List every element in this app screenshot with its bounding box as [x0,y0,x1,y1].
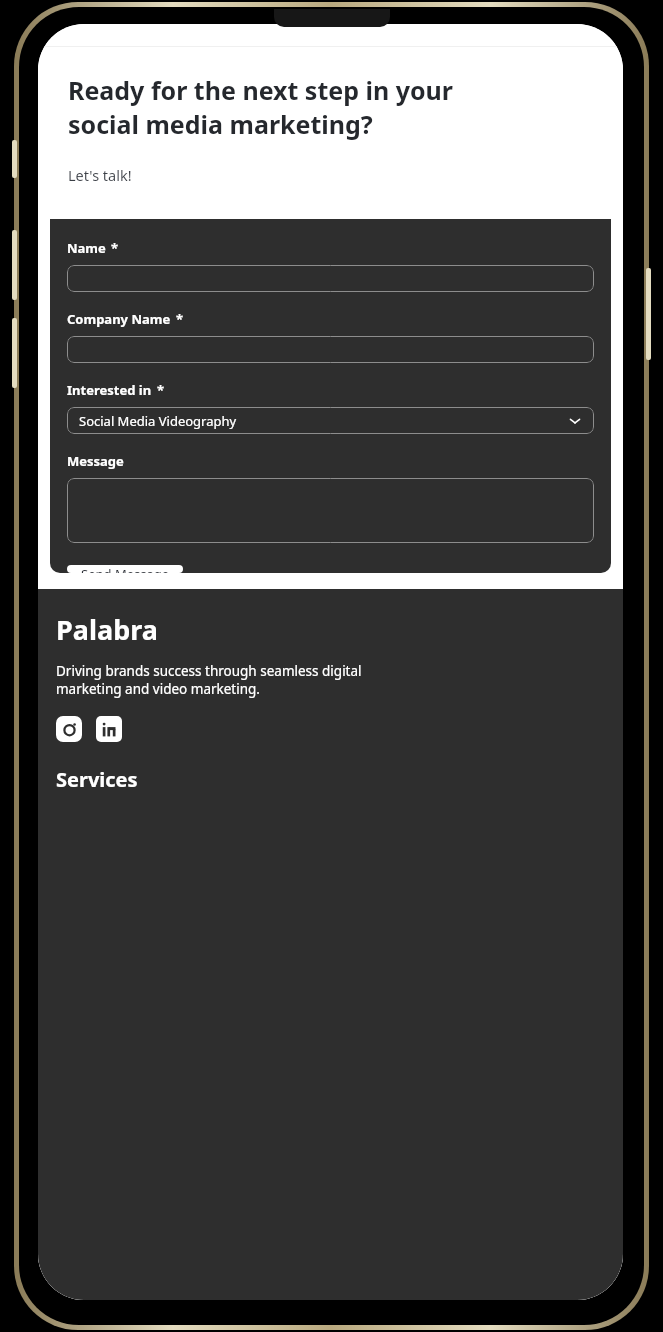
staticText: marketing and video marketing. [56,680,260,698]
button[interactable] [67,478,594,543]
button[interactable] [67,265,594,292]
staticText: Let's talk! [68,165,132,185]
button[interactable]: LinkedIn [96,716,122,742]
button[interactable] [67,336,594,363]
staticText: * [176,310,184,328]
staticText: * [111,239,119,257]
staticText: Message [67,452,124,470]
staticText: Services [56,766,138,793]
staticText: Driving brands success through seamless … [56,662,362,680]
staticText: Palabra [56,611,158,648]
staticText: * [157,381,165,399]
staticText: Interested in [67,381,152,399]
staticText: social media marketing? [68,107,373,141]
staticText: Company Name [67,310,171,328]
button[interactable]: Instagram [56,716,82,742]
staticText: Name [67,239,106,257]
button[interactable]: Social Media Videography [67,407,594,434]
staticText: Social Media Videography [79,412,237,430]
staticText: Ready for the next step in your [68,73,454,107]
button[interactable]: Send Message [67,565,183,573]
staticText: Send Message [81,565,170,573]
